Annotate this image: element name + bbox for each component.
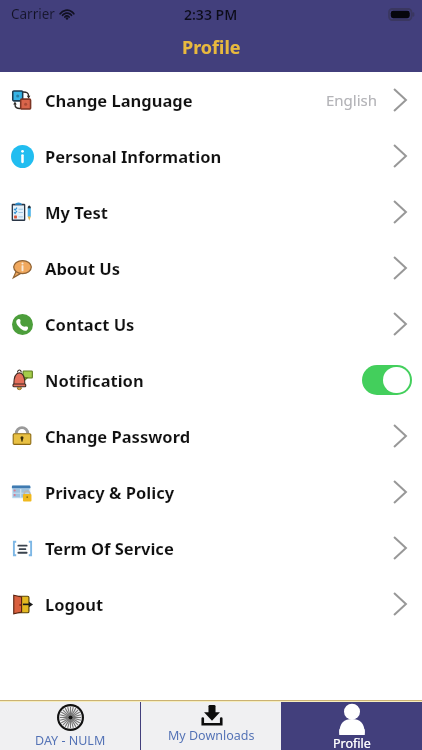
staticText: Privacy & Policy [45, 481, 175, 503]
button[interactable]: Profile [281, 702, 422, 750]
staticText: About Us [45, 257, 121, 279]
button[interactable]: About Us [0, 240, 422, 296]
staticText: Profile [182, 35, 241, 60]
staticText: Personal Information [45, 145, 222, 167]
button[interactable]: Change Password [0, 408, 422, 464]
staticText: Contact Us [45, 313, 135, 335]
staticText: Change Password [45, 425, 191, 447]
staticText: My Test [45, 201, 108, 223]
button[interactable]: Privacy & Policy [0, 464, 422, 520]
staticText: My Downloads [168, 727, 255, 744]
staticText: Notification [45, 369, 144, 391]
staticText: English [326, 90, 378, 110]
button[interactable]: Personal Information [0, 128, 422, 184]
staticText: Logout [45, 593, 104, 615]
button[interactable]: Contact Us [0, 296, 422, 352]
staticText: Term Of Service [45, 537, 174, 559]
staticText: 2:33 PM [184, 5, 238, 24]
staticText: DAY - NULM [35, 732, 106, 749]
button[interactable]: Change Language [0, 72, 422, 128]
button[interactable]: Notification toggle [362, 365, 412, 395]
staticText: Profile [333, 735, 371, 750]
button[interactable]: Notification [0, 352, 422, 408]
button[interactable]: My Downloads [141, 702, 281, 750]
button[interactable]: DAY - NULM [0, 702, 140, 750]
staticText: Change Language [45, 89, 193, 111]
staticText: Carrier [11, 5, 55, 23]
button[interactable]: Logout [0, 576, 422, 632]
button[interactable]: My Test [0, 184, 422, 240]
button[interactable]: Term Of Service [0, 520, 422, 576]
